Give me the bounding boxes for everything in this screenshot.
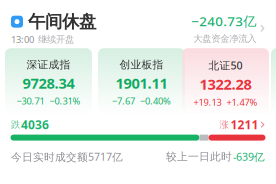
staticText: 涨 — [220, 119, 229, 130]
staticText: −7.67 — [112, 95, 135, 107]
staticText: 深证成指 — [26, 58, 70, 71]
staticText: 跌 — [11, 119, 20, 130]
staticText: 13:00 — [11, 33, 34, 46]
staticText: -639亿 — [233, 150, 265, 164]
staticText: 午间休盘 — [28, 11, 96, 32]
button[interactable]: −240.73亿 — [191, 12, 265, 44]
button[interactable]: 深证成指 — [5, 48, 92, 116]
staticText: 较上一日此时 — [166, 150, 232, 163]
button[interactable]: 创业板指 — [98, 48, 185, 116]
staticText: 大盘资金净流入 — [193, 33, 256, 44]
staticText: −0.40% — [140, 95, 171, 107]
staticText: +19.13 — [193, 96, 221, 108]
staticText: 北证50 — [208, 58, 242, 72]
staticText: 1322.28 — [199, 74, 251, 94]
staticText: 4036 — [21, 117, 49, 133]
staticText: 今日实时成交额5717亿 — [11, 150, 123, 164]
staticText: −240.73亿 — [191, 12, 256, 30]
staticText: 1901.11 — [115, 73, 167, 93]
staticText: 创业板指 — [119, 58, 163, 71]
staticText: 9728.34 — [22, 73, 74, 93]
staticText: −0.31% — [49, 95, 80, 107]
staticText: +1.47% — [226, 96, 257, 108]
button[interactable]: 涨 — [220, 117, 265, 133]
staticText: 1211 — [231, 117, 259, 133]
staticText: −30.71 — [16, 95, 44, 107]
button[interactable]: 北证50 — [182, 48, 269, 116]
staticText: 继续开盘 — [38, 34, 74, 45]
